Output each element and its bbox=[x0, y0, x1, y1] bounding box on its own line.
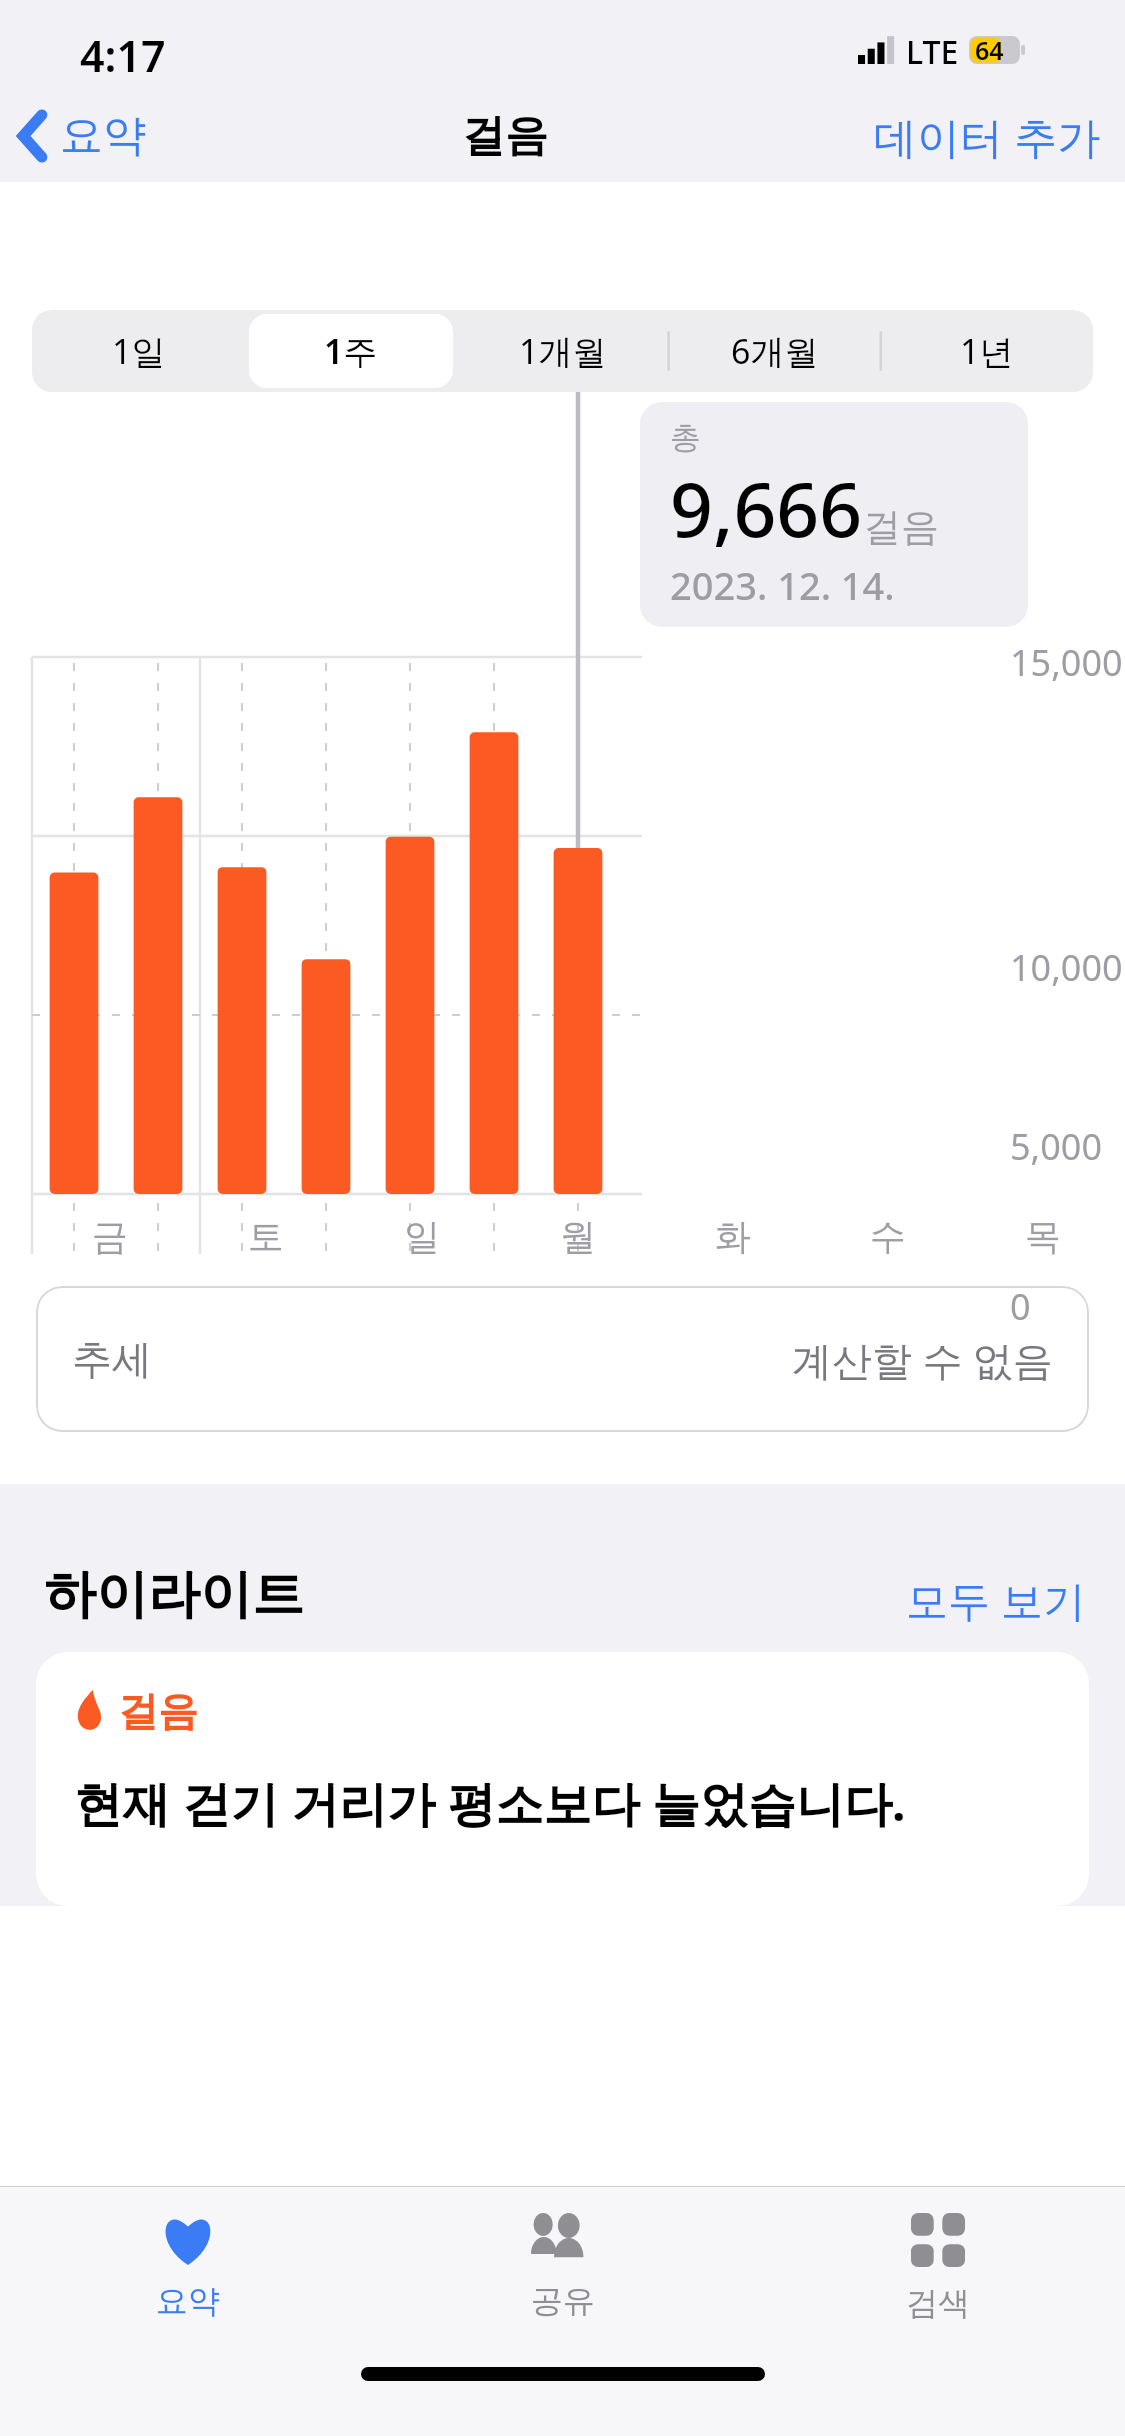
staticText: 9,666 bbox=[670, 457, 863, 559]
staticText: 걸음 bbox=[462, 109, 548, 163]
staticText: 월 bbox=[560, 1214, 596, 1259]
staticText: 4:17 bbox=[80, 26, 166, 85]
staticText: 일 bbox=[404, 1214, 440, 1259]
button[interactable]: 1년 bbox=[885, 314, 1089, 388]
button[interactable]: 공유 bbox=[375, 2187, 750, 2357]
staticText: 10,000 bbox=[1010, 943, 1123, 992]
button[interactable]: 요약 bbox=[0, 90, 160, 182]
staticText: 목 bbox=[1025, 1214, 1061, 1259]
button[interactable]: 1개월 bbox=[461, 314, 665, 388]
staticText: 토 bbox=[248, 1214, 284, 1259]
staticText: 데이터 추가 bbox=[874, 107, 1101, 166]
staticText: 2023. 12. 14. bbox=[670, 559, 895, 611]
button[interactable]: 검색 bbox=[750, 2187, 1125, 2357]
button[interactable]: 모두 보기 bbox=[906, 1571, 1085, 1628]
staticText: 요약 bbox=[156, 2281, 220, 2321]
staticText: 총 bbox=[670, 418, 701, 457]
staticText: 걸음 bbox=[118, 1686, 198, 1736]
staticText: LTE bbox=[906, 30, 959, 70]
staticText: 1주 bbox=[324, 328, 378, 374]
staticText: 요약 bbox=[60, 109, 146, 163]
staticText: 계산할 수 없음 bbox=[792, 1332, 1053, 1387]
button[interactable]: 1일 bbox=[36, 314, 241, 388]
staticText: 5,000 bbox=[1010, 1122, 1103, 1171]
staticText: 수 bbox=[870, 1214, 906, 1259]
button[interactable]: 요약 bbox=[0, 2187, 375, 2357]
staticText: 1년 bbox=[960, 328, 1014, 374]
staticText: 현재 걷기 거리가 평소보다 늘었습니다. bbox=[74, 1770, 906, 1836]
button[interactable]: 6개월 bbox=[673, 314, 877, 388]
staticText: 하이라이트 bbox=[44, 1562, 304, 1628]
button[interactable]: 걸음 bbox=[36, 1652, 1089, 1906]
staticText: 공유 bbox=[531, 2281, 595, 2321]
staticText: 64 bbox=[975, 33, 1004, 67]
button[interactable]: 추세 bbox=[36, 1286, 1089, 1432]
staticText: 금 bbox=[92, 1214, 128, 1259]
staticText: 추세 bbox=[72, 1334, 152, 1384]
staticText: 0 bbox=[1010, 1282, 1031, 1331]
staticText: 1개월 bbox=[519, 328, 607, 374]
button[interactable]: 1주 bbox=[249, 314, 453, 388]
staticText: 1일 bbox=[112, 328, 166, 374]
staticText: 화 bbox=[715, 1214, 751, 1259]
staticText: 6개월 bbox=[731, 328, 819, 374]
staticText: 검색 bbox=[906, 2283, 970, 2323]
staticText: 모두 보기 bbox=[906, 1571, 1085, 1628]
staticText: 15,000 bbox=[1010, 638, 1123, 687]
button[interactable]: 데이터 추가 bbox=[850, 90, 1125, 182]
staticText: 걸음 bbox=[863, 503, 939, 551]
